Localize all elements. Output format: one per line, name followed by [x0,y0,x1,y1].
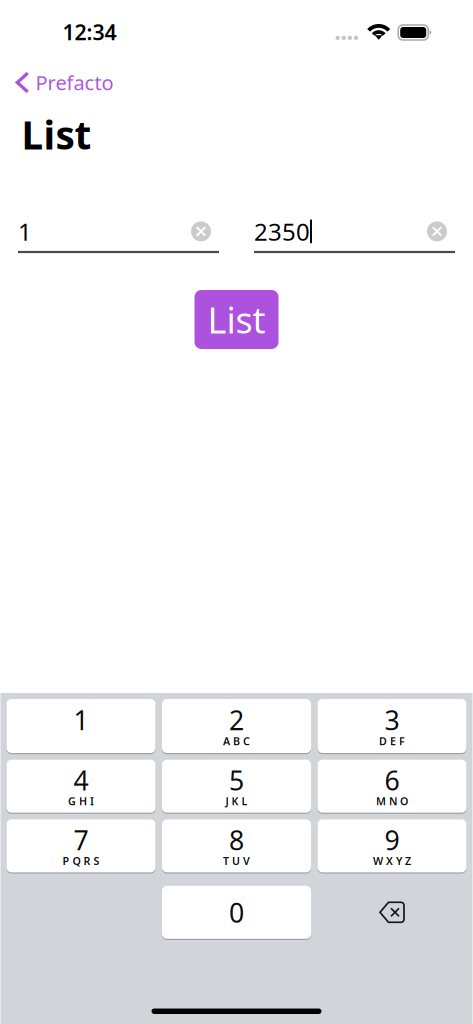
button[interactable]: 8 [162,819,311,872]
staticText: A B C [223,734,250,748]
staticText: 5 [229,762,244,798]
button[interactable]: 5 [162,760,311,813]
staticText: D E F [379,734,405,748]
staticText: T U V [223,854,250,868]
staticText: 3 [384,702,399,738]
staticText: 4 [73,762,88,798]
staticText: Prefacto [35,69,113,96]
button[interactable]: 3 [317,699,466,753]
staticText: 0 [229,895,244,930]
button[interactable]: Prefacto [0,64,125,100]
staticText: 12:34 [62,18,116,46]
staticText: P Q R S [62,854,99,868]
staticText: J K L [225,794,247,808]
button[interactable]: Clear text [419,213,455,249]
staticText: 1 [18,215,32,247]
staticText: 1 [73,702,88,738]
button[interactable]: 1 [6,699,155,753]
button[interactable]: 6 [317,760,466,813]
staticText: 6 [384,762,399,798]
staticText: 7 [73,822,88,858]
staticText: G H I [68,794,94,808]
button[interactable]: 4 [6,760,155,813]
staticText: List [207,296,265,343]
staticText: 9 [384,822,399,858]
button[interactable]: 2 [162,699,311,753]
button[interactable]: 7 [6,819,155,872]
button[interactable]: 0 [162,886,311,939]
button[interactable]: List [194,290,278,349]
button[interactable]: Clear text [183,213,219,249]
staticText: 8 [229,822,244,858]
button[interactable]: 9 [317,819,466,872]
button[interactable]: Delete [317,886,466,939]
staticText: M N O [376,794,408,808]
staticText: W X Y Z [373,854,411,868]
staticText: List [21,109,91,160]
staticText: 2350 [254,215,310,247]
staticText: 2 [229,702,244,738]
